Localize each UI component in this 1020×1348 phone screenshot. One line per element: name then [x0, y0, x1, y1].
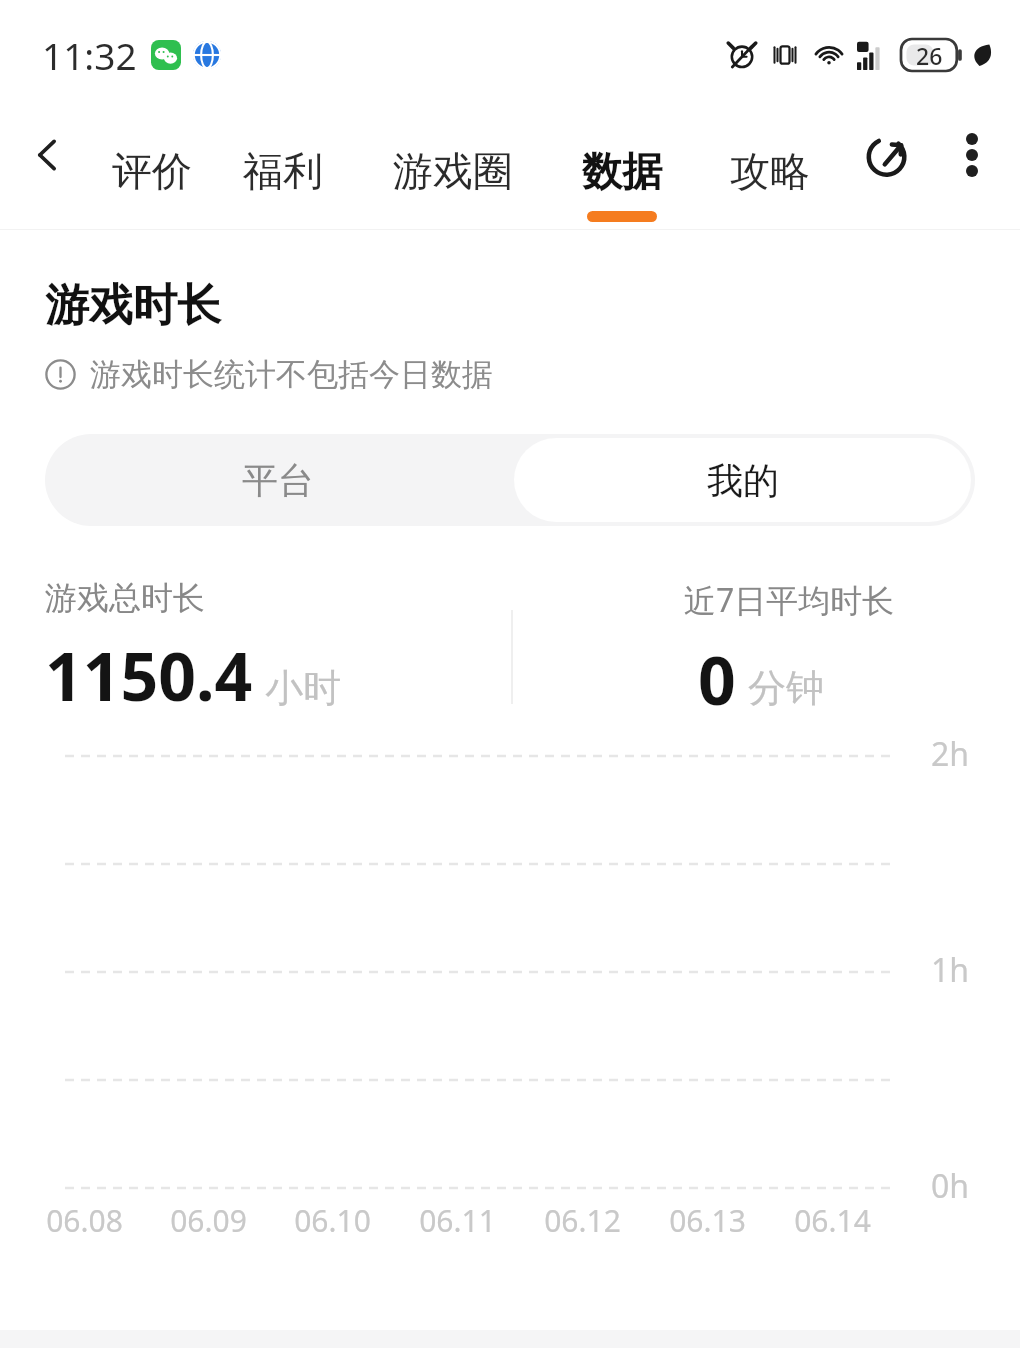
- staticText: 福利: [243, 146, 323, 196]
- staticText: 26: [916, 40, 943, 71]
- staticText: 11:32: [42, 30, 137, 80]
- staticText: 评价: [112, 146, 192, 196]
- button[interactable]: 我的: [514, 438, 971, 522]
- staticText: 06.10: [294, 1200, 371, 1241]
- button[interactable]: 福利: [208, 110, 358, 229]
- button[interactable]: 平台: [45, 434, 510, 526]
- staticText: 游戏时长: [45, 278, 221, 333]
- staticText: 游戏时长统计不包括今日数据: [90, 355, 493, 394]
- staticText: 06.11: [419, 1200, 496, 1241]
- staticText: 游戏圈: [393, 146, 513, 196]
- staticText: 06.13: [669, 1200, 746, 1241]
- staticText: 2h: [931, 732, 970, 776]
- staticText: 0h: [931, 1164, 970, 1208]
- button[interactable]: Back: [0, 110, 96, 200]
- staticText: 近7日平均时长: [684, 578, 895, 622]
- staticText: 0: [698, 634, 736, 718]
- staticText: 小时: [265, 664, 341, 712]
- staticText: 1h: [931, 948, 970, 992]
- staticText: 分钟: [748, 664, 824, 712]
- staticText: 游戏总时长: [45, 578, 205, 618]
- staticText: 攻略: [730, 146, 810, 196]
- staticText: 06.09: [170, 1200, 247, 1241]
- button[interactable]: 数据: [548, 110, 696, 229]
- button[interactable]: 评价: [96, 110, 208, 229]
- staticText: 06.12: [544, 1200, 621, 1241]
- button[interactable]: 攻略: [696, 110, 844, 229]
- staticText: 06.14: [794, 1200, 871, 1241]
- staticText: 数据: [582, 146, 662, 196]
- staticText: 06.08: [46, 1200, 123, 1241]
- staticText: 我的: [707, 458, 779, 503]
- button[interactable]: 游戏圈: [358, 110, 548, 229]
- staticText: 1150.4: [45, 630, 253, 718]
- button[interactable]: More options: [932, 110, 1012, 200]
- button[interactable]: Share: [844, 110, 932, 200]
- staticText: 平台: [242, 458, 314, 503]
